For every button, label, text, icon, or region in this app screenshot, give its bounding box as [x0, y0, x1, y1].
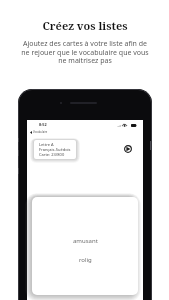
button[interactable]: amusant [32, 197, 138, 295]
staticText: Lettre A [39, 142, 54, 147]
staticText: amusant [73, 237, 98, 245]
button[interactable]: Lettre A [34, 140, 76, 159]
button[interactable]: Play [124, 145, 132, 153]
staticText: rolig [79, 256, 92, 264]
staticText: Créez vos listes [42, 18, 128, 33]
staticText: 8:52 [39, 122, 47, 127]
staticText: Ajoutez des cartes à votre liste afin de… [5, 39, 165, 65]
staticText: Carte: 23/800 [39, 152, 65, 157]
button[interactable]: Vocabulaire [30, 130, 48, 134]
staticText: Vocabulaire [33, 130, 48, 134]
staticText: Français-Suédois [39, 147, 71, 152]
